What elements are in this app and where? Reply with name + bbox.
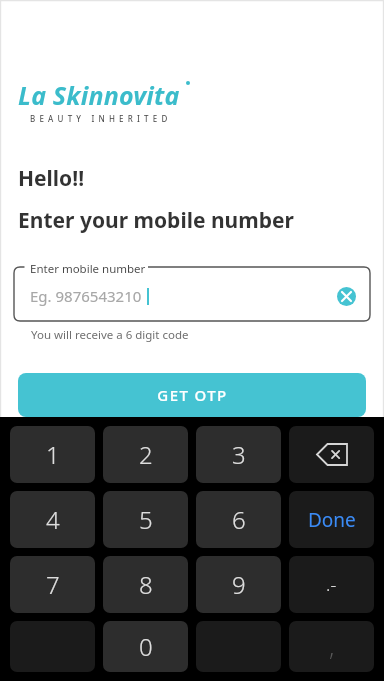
staticText: 6 xyxy=(232,503,246,536)
button[interactable]: Enter mobile number xyxy=(14,267,370,321)
staticText: Done xyxy=(308,507,356,533)
button[interactable]: 1 xyxy=(10,426,95,483)
staticText: GET OTP xyxy=(157,385,228,405)
staticText: You will receive a 6 digit code xyxy=(31,327,189,343)
staticText: Enter mobile number xyxy=(30,261,146,277)
staticText: .- xyxy=(326,572,337,597)
staticText: Enter your mobile number xyxy=(18,206,294,235)
button[interactable]: , xyxy=(289,621,374,672)
button[interactable]: 8 xyxy=(103,556,188,613)
button[interactable]: GET OTP xyxy=(18,373,366,417)
staticText: La Skinnovita xyxy=(18,78,180,112)
staticText: 9 xyxy=(232,568,246,601)
button[interactable]: 7 xyxy=(10,556,95,613)
button[interactable]: .- xyxy=(289,556,374,613)
button[interactable]: 5 xyxy=(103,491,188,548)
staticText: 4 xyxy=(46,503,60,536)
button[interactable]: 2 xyxy=(103,426,188,483)
staticText: 5 xyxy=(139,503,153,536)
staticText: , xyxy=(329,630,335,663)
staticText: 8 xyxy=(139,568,153,601)
button[interactable]: 9 xyxy=(196,556,281,613)
staticText: Hello!! xyxy=(18,164,85,193)
button[interactable]: Backspace xyxy=(289,426,374,483)
button[interactable]: 6 xyxy=(196,491,281,548)
button[interactable]: 0 xyxy=(103,621,188,672)
staticText: 0 xyxy=(139,630,153,663)
button[interactable]: Clear text xyxy=(337,287,356,306)
staticText: Eg. 9876543210 xyxy=(30,286,142,306)
button[interactable]: Done xyxy=(289,491,374,548)
staticText: 7 xyxy=(46,568,60,601)
staticText: BEAUTY INHERITED xyxy=(30,113,172,124)
button[interactable]: 3 xyxy=(196,426,281,483)
staticText: 3 xyxy=(232,438,246,471)
button[interactable]: 4 xyxy=(10,491,95,548)
staticText: 1 xyxy=(46,438,60,471)
staticText: 2 xyxy=(139,438,153,471)
